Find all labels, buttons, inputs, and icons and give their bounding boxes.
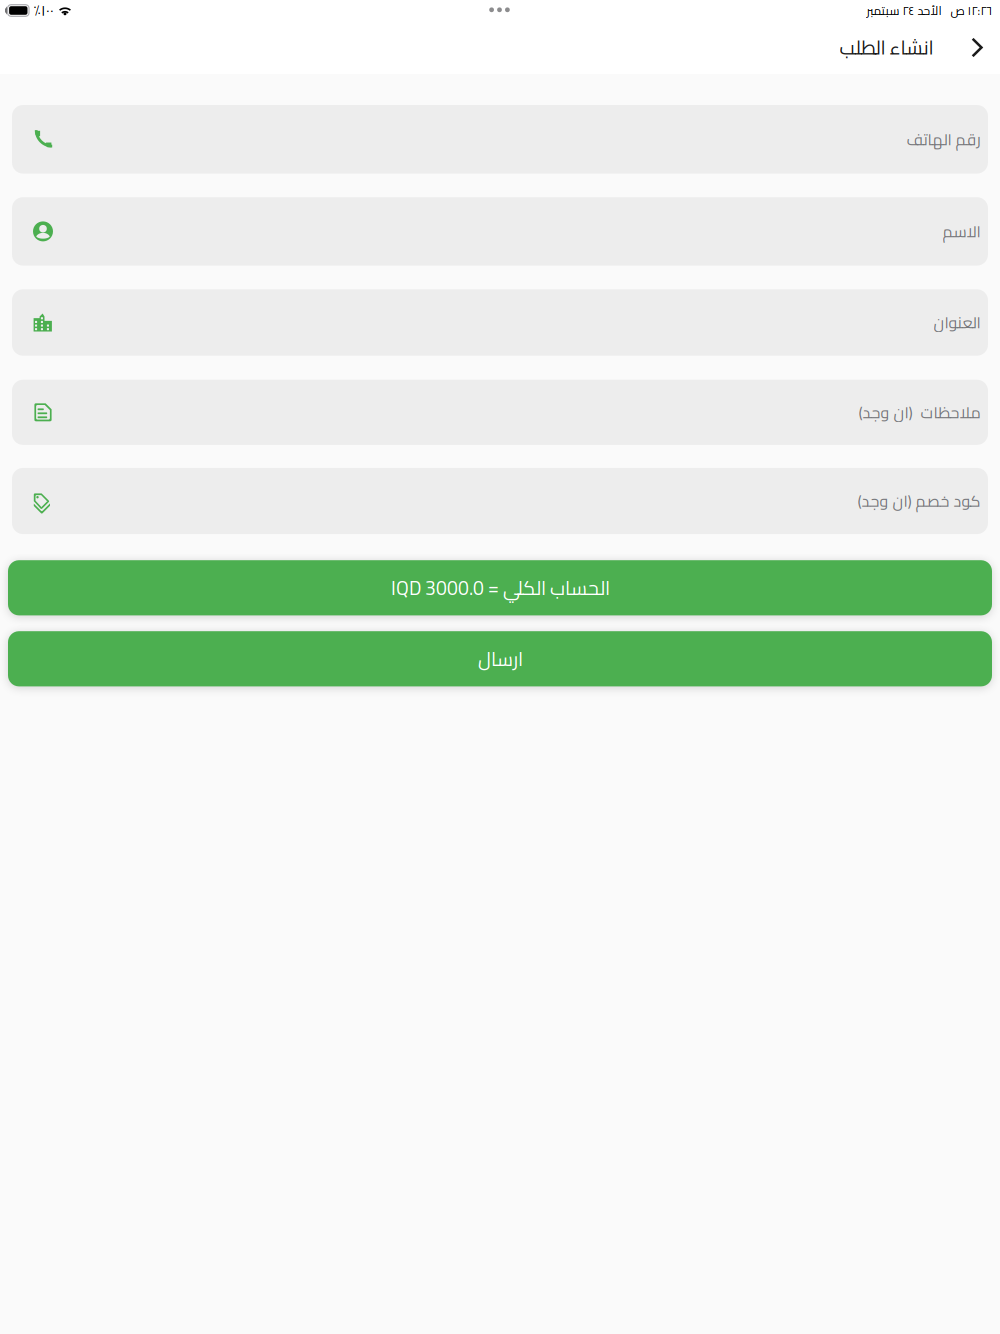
staticText: ملاحظات (ان وجد) [858,397,980,427]
button[interactable]: كود خصم (ان وجد) [12,468,988,534]
button[interactable]: العنوان [12,289,988,356]
button[interactable]: الحساب الكلي = IQD 3000.0 [8,560,992,615]
button[interactable]: ملاحظات (ان وجد) [12,380,988,445]
button[interactable]: ارسال [8,631,992,686]
staticText: الحساب الكلي = IQD 3000.0 [390,570,609,606]
staticText: كود خصم (ان وجد) [857,486,980,516]
staticText: رقم الهاتف [906,124,980,154]
button[interactable]: رجوع [955,24,1000,71]
button[interactable]: الاسم [12,197,988,266]
staticText: العنوان [933,307,980,337]
staticText: انشاء الطلب [839,29,933,66]
staticText: ١٢:٢٦ ص الأحد ٢٤ سبتمبر [866,0,992,22]
staticText: ارسال [477,641,522,677]
button[interactable]: رقم الهاتف [12,105,988,174]
staticText: الاسم [942,216,980,246]
staticText: ٪١٠٠ [33,0,54,24]
